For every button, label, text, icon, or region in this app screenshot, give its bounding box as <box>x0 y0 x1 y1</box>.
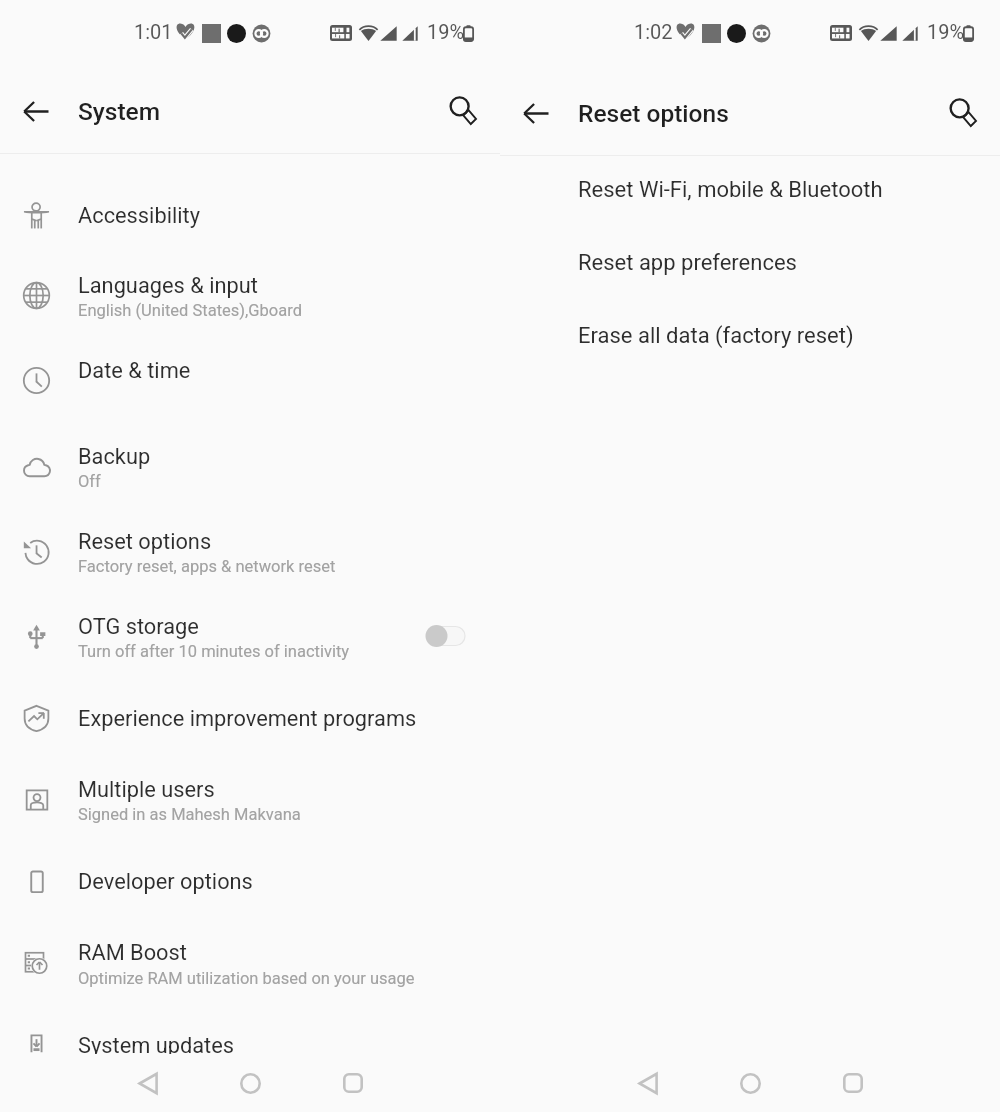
button[interactable] <box>0 688 500 758</box>
button[interactable]: Back <box>124 1059 172 1107</box>
staticText: Multiple users <box>78 777 215 803</box>
button[interactable] <box>0 851 500 921</box>
button[interactable] <box>500 235 1000 308</box>
button[interactable]: Recents <box>829 1059 877 1107</box>
button[interactable] <box>500 308 1000 381</box>
staticText: System <box>78 97 161 126</box>
staticText: Date & time <box>78 358 191 384</box>
staticText: 1:01 <box>134 20 173 43</box>
button[interactable] <box>500 162 1000 235</box>
staticText: 19% <box>427 20 465 43</box>
button[interactable] <box>0 511 500 596</box>
staticText: English (United States),Gboard <box>78 301 302 320</box>
staticText: RAM Boost <box>78 940 187 966</box>
button[interactable]: Back <box>512 89 560 137</box>
staticText: Reset options <box>78 529 212 555</box>
button[interactable] <box>0 426 500 511</box>
staticText: Turn off after 10 minutes of inactivity <box>78 642 350 661</box>
staticText: Backup <box>78 444 151 470</box>
staticText: Signed in as Mahesh Makvana <box>78 805 301 824</box>
staticText: 19% <box>927 20 965 43</box>
button[interactable] <box>0 596 500 681</box>
button[interactable] <box>0 922 500 1007</box>
staticText: 1:02 <box>634 20 673 43</box>
staticText: Reset options <box>578 99 729 128</box>
button[interactable]: Search <box>939 88 987 136</box>
staticText: Experience improvement programs <box>78 706 417 732</box>
button[interactable]: Recents <box>329 1059 377 1107</box>
button[interactable] <box>0 759 500 844</box>
staticText: System updates <box>78 1033 235 1059</box>
staticText: Erase all data (factory reset) <box>578 323 854 349</box>
button[interactable]: Home <box>226 1059 274 1107</box>
button[interactable] <box>0 185 500 255</box>
staticText: Reset Wi-Fi, mobile & Bluetooth <box>578 177 883 203</box>
staticText: Accessibility <box>78 203 200 229</box>
staticText: Developer options <box>78 869 253 895</box>
staticText: Off <box>78 472 101 491</box>
staticText: Reset app preferences <box>578 250 797 276</box>
staticText: OTG storage <box>78 614 199 640</box>
button[interactable] <box>0 255 500 340</box>
staticText: Factory reset, apps & network reset <box>78 557 336 576</box>
staticText: Languages & input <box>78 273 258 299</box>
button[interactable]: OTG storage toggle <box>425 620 467 652</box>
staticText: Optimize RAM utilization based on your u… <box>78 969 415 988</box>
button[interactable] <box>0 1015 500 1085</box>
button[interactable]: Back <box>624 1059 672 1107</box>
button[interactable]: Search <box>439 86 487 134</box>
button[interactable]: Home <box>726 1059 774 1107</box>
button[interactable] <box>0 340 500 410</box>
button[interactable]: Back <box>12 87 60 135</box>
